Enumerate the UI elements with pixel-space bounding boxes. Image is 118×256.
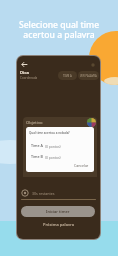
staticText: Selecione qual time acertou a palavra: [0, 19, 118, 41]
staticText: VER PALAVRA: [80, 74, 97, 78]
staticText: 30s restantes: [32, 191, 55, 196]
button[interactable]: VER PALAVRA: [78, 71, 99, 80]
staticText: Iniciar timer: [46, 209, 70, 214]
staticText: Dica: [20, 70, 29, 76]
staticText: Cancelar: [74, 163, 89, 168]
staticText: TIME A: [63, 74, 72, 78]
button[interactable]: Time B: [31, 153, 61, 160]
staticText: Objetivo: [26, 120, 43, 126]
staticText: (0 pontos): [45, 155, 61, 159]
button[interactable]: Cancelar: [72, 161, 90, 169]
button[interactable]: Próxima palavra: [21, 219, 95, 230]
staticText: Próxima palavra: [43, 222, 74, 227]
staticText: Time A: [31, 143, 43, 148]
staticText: Qual time acertou a rodada?: [29, 131, 70, 135]
staticText: Coordenada: [20, 76, 38, 80]
button[interactable]: Iniciar timer: [21, 206, 95, 217]
button[interactable]: Back: [20, 60, 29, 69]
staticText: (0 pontos): [45, 144, 61, 148]
button[interactable]: Time A: [31, 142, 61, 149]
staticText: Time B: [31, 154, 43, 159]
button[interactable]: TIME A: [58, 71, 77, 80]
